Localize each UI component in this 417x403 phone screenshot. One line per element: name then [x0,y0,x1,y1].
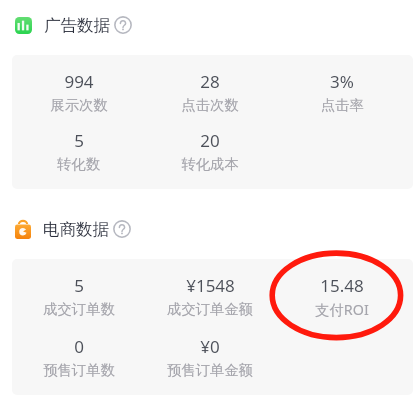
staticText: 预售订单金额 [167,361,253,379]
staticText: 支付ROI [315,300,369,320]
staticText: ¥1548 [186,274,235,297]
staticText: ¥0 [200,335,220,358]
staticText: 成交订单金额 [167,300,253,318]
staticText: 点击次数 [181,96,239,114]
staticText: 3% [330,70,354,93]
staticText: 28 [200,70,220,93]
staticText: 994 [64,70,94,93]
staticText: 点击率 [321,96,364,114]
staticText: 转化成本 [181,155,239,173]
staticText: 展示次数 [50,96,108,114]
staticText: 转化数 [57,155,100,173]
staticText: 电商数据 [43,219,109,239]
staticText: 预售订单数 [43,361,115,379]
staticText: 0 [74,335,84,358]
button[interactable]: Help [113,220,131,238]
staticText: 15.48 [320,274,364,297]
staticText: 5 [74,274,84,297]
staticText: 5 [74,129,84,152]
button[interactable]: Help [114,16,132,34]
staticText: 20 [200,129,220,152]
staticText: 广告数据 [44,15,110,35]
staticText: 成交订单数 [43,300,115,318]
